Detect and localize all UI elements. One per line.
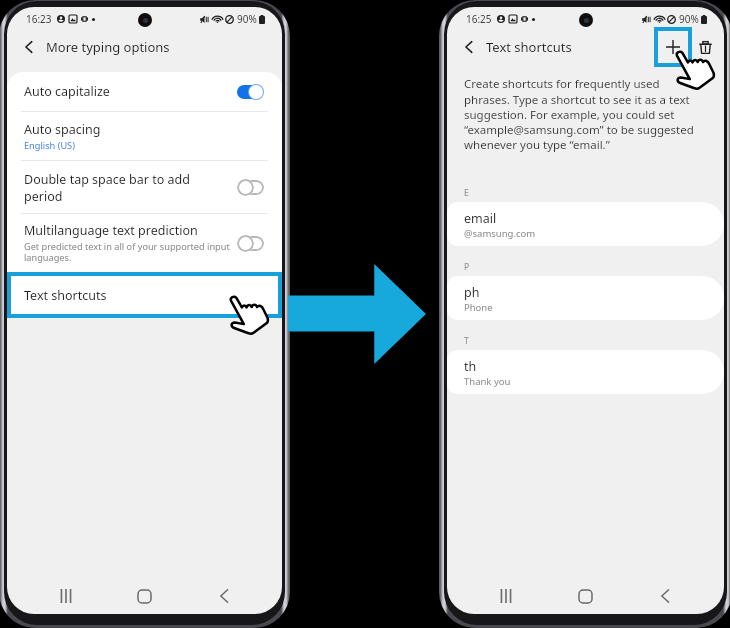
staticText: E [464,187,469,199]
button[interactable]: Back [625,578,705,614]
staticText: ph [464,284,480,301]
button[interactable]: Add shortcut [654,27,692,67]
staticText: Phone [464,301,493,314]
button[interactable]: Multilanguage text prediction [7,214,282,272]
staticText: Auto capitalize [24,83,110,100]
staticText: Text shortcuts [486,38,572,56]
button[interactable]: Toggle [237,83,264,100]
button[interactable]: Home [105,578,184,614]
staticText: Multilanguage text prediction [24,222,214,239]
button[interactable]: Auto capitalize [7,72,282,111]
button[interactable]: Text shortcuts [7,272,282,318]
staticText: th [464,358,477,375]
staticText: English (US) [24,139,75,152]
staticText: 16:25 [466,12,492,26]
staticText: Create shortcuts for frequently used phr… [464,76,697,152]
staticText: More typing options [46,38,170,56]
staticText: Double tap space bar to add period [24,171,194,204]
button[interactable]: th [447,350,724,394]
button[interactable]: Home [545,578,625,614]
staticText: @samsung.com [464,227,536,240]
button[interactable]: Back [184,578,263,614]
button[interactable]: Navigate up [19,37,39,57]
staticText: email [464,210,497,227]
button[interactable]: Recent apps [26,578,105,614]
button[interactable]: Double tap space bar to add period [7,161,282,213]
button[interactable]: Toggle [237,179,264,196]
staticText: 16:23 [26,12,52,26]
button[interactable]: Delete [695,37,715,57]
staticText: Auto spacing [24,121,101,138]
staticText: 90% [237,12,257,26]
staticText: Text shortcuts [24,287,107,304]
button[interactable]: email [447,202,724,246]
button[interactable]: Auto spacing [7,112,282,160]
staticText: 90% [679,12,699,26]
staticText: Thank you [464,375,511,388]
button[interactable]: ph [447,276,724,320]
button[interactable]: Toggle [237,235,264,252]
staticText: T [464,335,469,347]
button[interactable]: Recent apps [466,578,545,614]
button[interactable]: Navigate up [459,37,479,57]
staticText: Get predicted text in all of your suppor… [24,240,231,264]
staticText: P [464,261,470,273]
